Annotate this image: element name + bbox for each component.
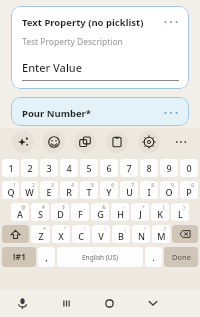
staticText: _ (83, 204, 85, 210)
button[interactable]: " (52, 225, 70, 243)
button[interactable]: Hide keyboard (131, 289, 174, 317)
staticText: & (102, 204, 106, 210)
staticText: U (126, 186, 133, 198)
button[interactable]: 5 (80, 181, 98, 199)
button[interactable]: 0 (180, 181, 198, 199)
button[interactable]: 7 (120, 159, 138, 177)
button[interactable]: : (92, 225, 110, 243)
button[interactable]: 4 (60, 159, 78, 177)
button[interactable]: 1 (2, 159, 19, 177)
staticText: F (78, 208, 83, 220)
staticText: $ (62, 204, 65, 210)
staticText: L (178, 208, 183, 220)
staticText: C (78, 230, 84, 242)
button[interactable]: 1 (2, 181, 19, 199)
button[interactable]: Pour Number* (11, 97, 189, 126)
button[interactable]: Backspace (172, 225, 198, 243)
button[interactable]: More options (161, 106, 181, 120)
staticText: - (123, 204, 125, 210)
button[interactable]: 6 (100, 159, 118, 177)
button[interactable]: 9 (160, 181, 178, 199)
button[interactable]: Home (88, 289, 131, 317)
button[interactable]: ? (152, 225, 170, 243)
button[interactable]: ( (151, 203, 169, 221)
button[interactable]: 8 (140, 159, 158, 177)
staticText: 6 (111, 182, 114, 188)
button[interactable]: 2 (21, 159, 38, 177)
button[interactable]: Shift (2, 225, 29, 243)
staticText: # (42, 204, 45, 210)
button[interactable]: Smart suggestions (12, 131, 34, 153)
button[interactable]: + (131, 203, 149, 221)
staticText: G (97, 208, 104, 220)
button[interactable]: 9 (160, 159, 178, 177)
button[interactable]: 5 (80, 159, 98, 177)
staticText: I (147, 186, 151, 198)
button[interactable]: 0 (180, 159, 198, 177)
button[interactable]: Voice input (0, 289, 44, 317)
staticText: 3 (46, 162, 52, 174)
staticText: K (157, 208, 163, 220)
button[interactable]: 6 (100, 181, 118, 199)
staticText: ! (144, 226, 146, 232)
staticText: 0 (186, 162, 192, 174)
button[interactable]: Emoji (43, 131, 65, 153)
button[interactable]: 4 (60, 181, 78, 199)
button[interactable]: 7 (120, 181, 138, 199)
button[interactable]: * (31, 225, 50, 243)
button[interactable]: & (91, 203, 109, 221)
staticText: O (165, 186, 173, 198)
button[interactable]: Text Property (no picklist) (11, 6, 189, 89)
staticText: 1 (13, 182, 16, 188)
button[interactable]: _ (71, 203, 89, 221)
button[interactable]: ' (72, 225, 90, 243)
staticText: X (58, 230, 64, 242)
staticText: P (186, 186, 192, 198)
staticText: 5 (91, 182, 94, 188)
staticText: A (17, 208, 23, 220)
button[interactable]: - (111, 203, 129, 221)
staticText: ? (164, 226, 166, 232)
button[interactable]: ; (112, 225, 130, 243)
staticText: Y (106, 186, 112, 198)
button[interactable]: Done (164, 247, 198, 267)
staticText: J (139, 208, 142, 220)
button[interactable]: 2 (21, 181, 38, 199)
button[interactable]: !#1 (2, 247, 36, 267)
button[interactable]: @ (11, 203, 29, 221)
staticText: Z (38, 230, 44, 242)
button[interactable]: 3 (40, 181, 58, 199)
button[interactable]: Recent apps (44, 289, 88, 317)
staticText: + (142, 204, 145, 210)
button[interactable]: ! (132, 225, 150, 243)
button[interactable]: English (US) (57, 247, 143, 267)
button[interactable]: 3 (40, 159, 58, 177)
staticText: Pour Number* (22, 107, 161, 120)
button[interactable]: $ (51, 203, 69, 221)
staticText: M (157, 230, 166, 242)
staticText: * (43, 226, 46, 232)
staticText: . (152, 251, 155, 263)
staticText: , (45, 251, 48, 263)
button[interactable]: 8 (140, 181, 158, 199)
staticText: 7 (131, 182, 134, 188)
staticText: : (104, 226, 106, 232)
staticText: 3 (51, 182, 54, 188)
button[interactable]: Stickers (74, 131, 96, 153)
staticText: Test Property Description (22, 36, 123, 48)
staticText: Q (7, 186, 15, 198)
button[interactable]: # (31, 203, 49, 221)
staticText: !#1 (13, 251, 26, 263)
button[interactable]: ) (171, 203, 189, 221)
staticText: 9 (171, 182, 174, 188)
staticText: ) (183, 204, 185, 210)
button[interactable]: , (38, 247, 55, 267)
button[interactable]: Keyboard settings (138, 131, 160, 153)
button[interactable]: More options (161, 15, 181, 29)
button[interactable]: . (145, 247, 162, 267)
staticText: B (118, 230, 124, 242)
button[interactable]: Clipboard (106, 131, 128, 153)
button[interactable]: More keyboard options (170, 131, 192, 153)
staticText: Done (172, 252, 191, 262)
staticText: English (US) (82, 253, 119, 262)
